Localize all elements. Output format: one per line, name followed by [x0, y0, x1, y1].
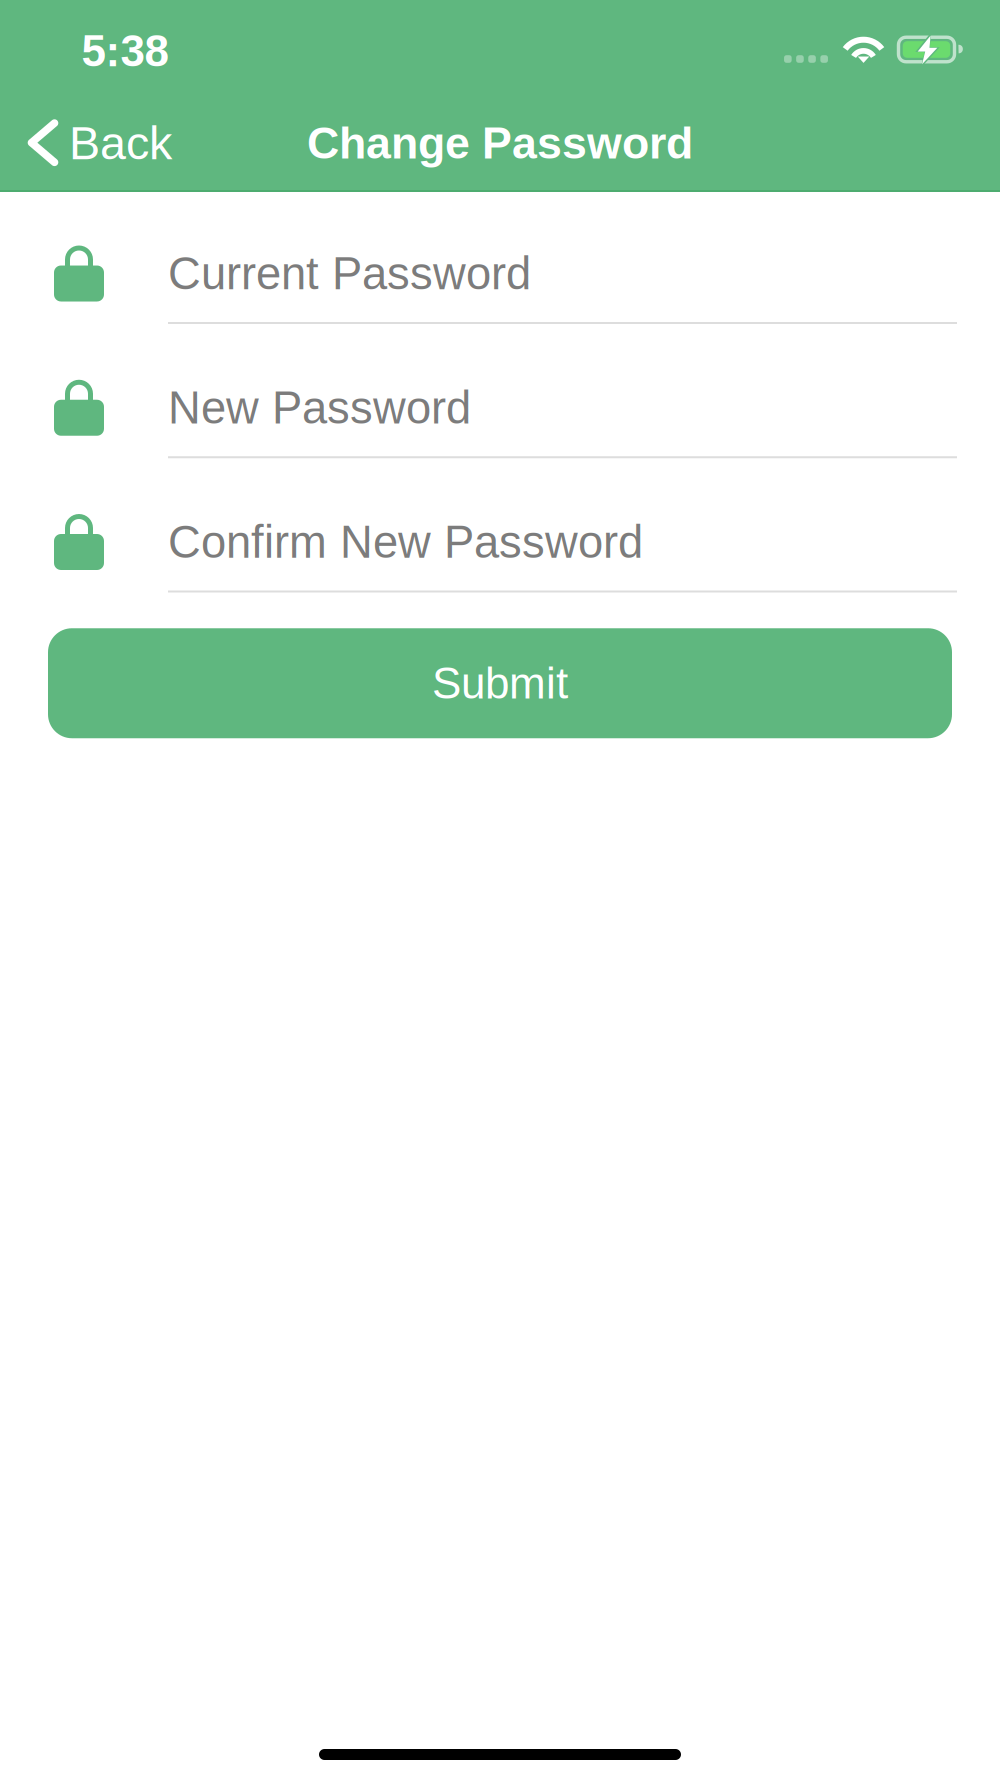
staticText: Current Password — [168, 248, 531, 299]
staticText: Submit — [432, 659, 568, 708]
staticText: 5:38 — [81, 26, 168, 76]
button[interactable]: Confirm New Password — [0, 474, 1000, 609]
staticText: New Password — [168, 382, 471, 433]
button[interactable]: Submit — [48, 628, 952, 738]
staticText: Confirm New Password — [168, 517, 643, 567]
staticText: Back — [69, 117, 172, 169]
button[interactable]: Back — [0, 95, 192, 191]
button[interactable]: New Password — [0, 340, 1000, 474]
staticText: Change Password — [307, 118, 693, 168]
button[interactable]: Current Password — [0, 206, 1000, 340]
